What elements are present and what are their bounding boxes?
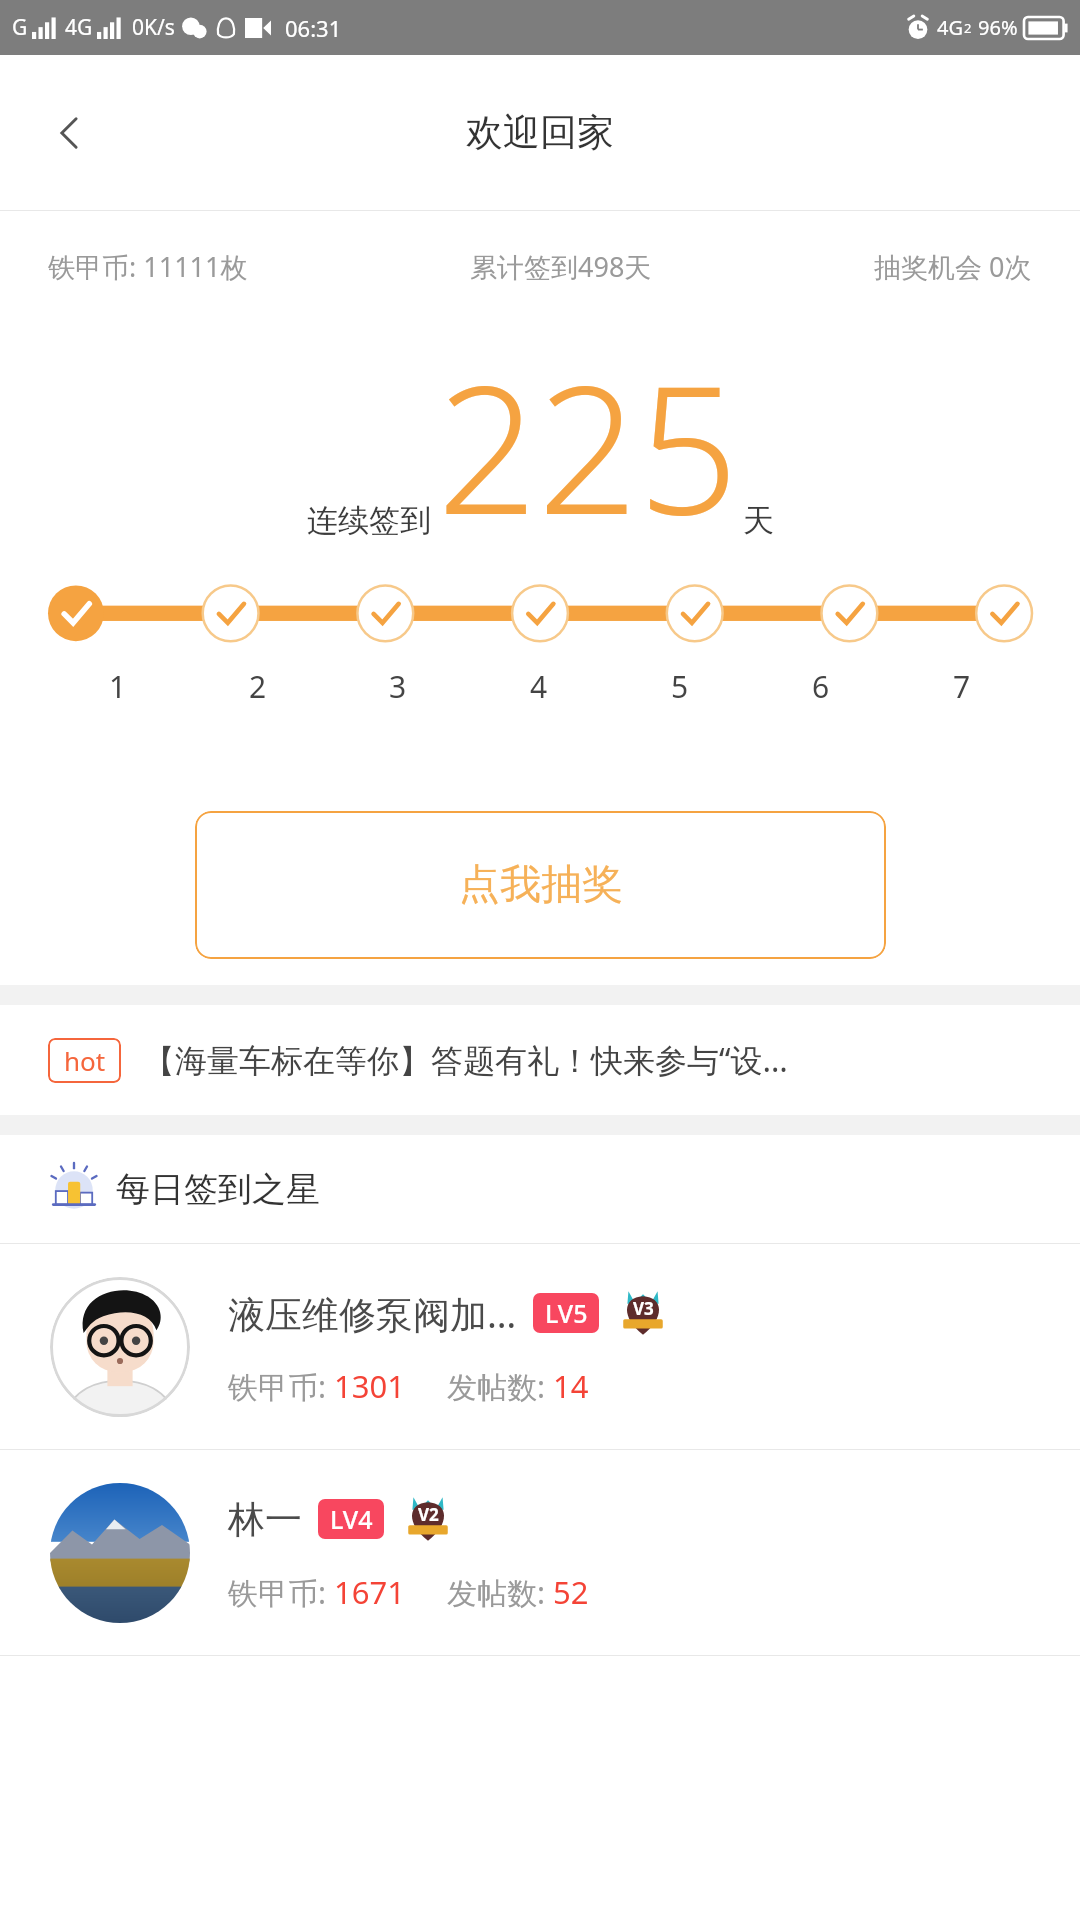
staticText: 7 [953, 666, 971, 707]
staticText: 6 [812, 666, 830, 707]
staticText: 【海量车标在等你】答题有礼！快来参与“设… [143, 1038, 788, 1082]
staticText: hot [64, 1043, 106, 1078]
staticText: 96% [978, 14, 1018, 41]
staticText: 点我抽奖 [459, 859, 623, 911]
staticText: 0K/s [132, 13, 175, 42]
staticText: 1 [109, 666, 127, 707]
staticText: 液压维修泵阀加… [228, 1288, 517, 1339]
staticText: 铁甲币: [228, 1366, 334, 1407]
staticText: 4 [530, 666, 548, 707]
staticText: 抽奖机会 0次 [874, 248, 1032, 285]
staticText: G [12, 13, 28, 42]
staticText: 3 [389, 666, 407, 707]
button[interactable]: Back [40, 103, 100, 163]
staticText: 5 [671, 666, 689, 707]
button[interactable]: 液压维修泵阀加… [0, 1244, 1080, 1449]
staticText: 4G [937, 14, 963, 41]
staticText: 天 [743, 501, 774, 540]
staticText: V2 [418, 1503, 439, 1526]
staticText: 52 [553, 1571, 589, 1613]
staticText: 每日签到之星 [116, 1168, 320, 1211]
staticText: 4G [65, 13, 93, 42]
staticText: 林一 [228, 1496, 302, 1543]
staticText: 225 [437, 326, 739, 566]
staticText: 累计签到498天 [470, 248, 652, 285]
staticText: 铁甲币: [228, 1572, 334, 1613]
staticText: 发帖数: [447, 1366, 553, 1407]
staticText: LV4 [330, 1502, 373, 1536]
staticText: 06:31 [285, 13, 342, 43]
staticText: 连续签到 [307, 501, 431, 540]
staticText: 铁甲币: 11111枚 [48, 248, 248, 285]
staticText: 发帖数: [447, 1572, 553, 1613]
button[interactable]: 林一 [0, 1450, 1080, 1655]
staticText: 欢迎回家 [466, 109, 614, 156]
staticText: 1301 [334, 1365, 405, 1407]
button[interactable]: 点我抽奖 [195, 811, 886, 959]
staticText: 1671 [334, 1571, 405, 1613]
staticText: V3 [633, 1297, 654, 1320]
staticText: 2 [964, 19, 972, 37]
staticText: LV5 [545, 1296, 588, 1330]
staticText: 2 [249, 666, 267, 707]
staticText: 14 [553, 1365, 589, 1407]
button[interactable]: hot [0, 1005, 1080, 1115]
